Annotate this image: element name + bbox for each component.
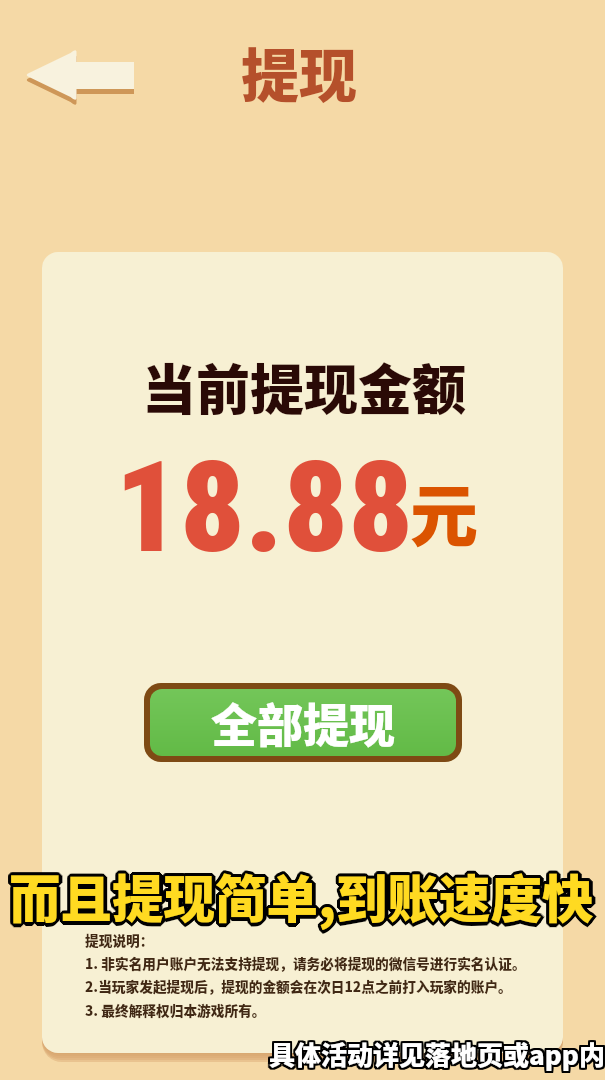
staticText: 具体活动详见落地页或app内 (267, 1036, 603, 1074)
staticText: 具体活动详见落地页或app内 (271, 1033, 605, 1071)
staticText: 具体活动详见落地页或app内 (270, 1033, 605, 1071)
button[interactable]: Back (16, 40, 144, 112)
staticText: 具体活动详见落地页或app内 (267, 1033, 603, 1071)
staticText: 具体活动详见落地页或app内 (271, 1034, 605, 1072)
staticText: 而且提现简单,到账速度快 (6, 858, 591, 933)
staticText: 而且提现简单,到账速度快 (11, 860, 596, 935)
staticText: 而且提现简单,到账速度快 (9, 855, 594, 930)
staticText: 具体活动详见落地页或app内 (271, 1037, 605, 1075)
staticText: 18.88 (115, 433, 414, 582)
button[interactable]: 全部提现 (150, 689, 456, 756)
staticText: 具体活动详见落地页或app内 (270, 1037, 605, 1075)
staticText: 当前提现金额 (142, 347, 466, 425)
staticText: 而且提现简单,到账速度快 (7, 860, 592, 935)
staticText: 而且提现简单,到账速度快 (6, 857, 591, 932)
staticText: 具体活动详见落地页或app内 (269, 1037, 605, 1075)
staticText: 具体活动详见落地页或app内 (269, 1035, 605, 1073)
staticText: 而且提现简单,到账速度快 (10, 861, 595, 936)
staticText: 而且提现简单,到账速度快 (9, 862, 594, 937)
staticText: 而且提现简单,到账速度快 (6, 859, 591, 934)
staticText: 而且提现简单,到账速度快 (10, 855, 595, 930)
staticText: 具体活动详见落地页或app内 (268, 1033, 604, 1071)
staticText: 而且提现简单,到账速度快 (7, 856, 592, 931)
staticText: 提现 (241, 30, 358, 114)
staticText: 具体活动详见落地页或app内 (271, 1035, 605, 1073)
staticText: 具体活动详见落地页或app内 (267, 1034, 603, 1072)
staticText: 具体活动详见落地页或app内 (269, 1033, 605, 1071)
staticText: 提现说明： (85, 930, 154, 950)
staticText: 2.当玩家发起提现后，提现的金额会在次日12点之前打入玩家的账户。 (85, 976, 512, 996)
staticText: 元 (410, 462, 479, 560)
staticText: 具体活动详见落地页或app内 (268, 1037, 604, 1075)
staticText: 而且提现简单,到账速度快 (8, 855, 593, 930)
staticText: 具体活动详见落地页或app内 (271, 1036, 605, 1074)
staticText: 1. 非实名用户账户无法支持提现，请务必将提现的微信号进行实名认证。 (85, 953, 526, 973)
staticText: 而且提现简单,到账速度快 (12, 859, 597, 934)
staticText: 而且提现简单,到账速度快 (8, 861, 593, 936)
staticText: 3. 最终解释权归本游戏所有。 (85, 1000, 266, 1020)
staticText: 而且提现简单,到账速度快 (9, 858, 594, 933)
staticText: 具体活动详见落地页或app内 (267, 1037, 603, 1075)
staticText: 而且提现简单,到账速度快 (12, 857, 597, 932)
staticText: 全部提现 (211, 689, 395, 756)
staticText: 具体活动详见落地页或app内 (267, 1035, 603, 1073)
staticText: 而且提现简单,到账速度快 (13, 858, 598, 933)
staticText: 而且提现简单,到账速度快 (11, 856, 596, 931)
